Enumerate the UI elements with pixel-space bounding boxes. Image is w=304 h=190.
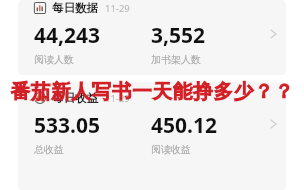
- staticText: 阅读人数: [34, 53, 74, 66]
- staticText: 450.12: [151, 111, 217, 140]
- staticText: 总收益: [34, 143, 64, 156]
- staticText: 44,243: [34, 21, 101, 50]
- staticText: 每日收益: [52, 91, 98, 105]
- button[interactable]: 查看详情: [261, 21, 286, 47]
- staticText: 11-29: [105, 92, 130, 105]
- button[interactable]: 查看详情: [261, 111, 286, 137]
- button[interactable]: 每日数据: [18, 0, 286, 75]
- staticText: 533.05: [34, 111, 100, 140]
- staticText: 加书架人数: [151, 53, 201, 66]
- staticText: 11-29: [105, 2, 130, 15]
- staticText: 每日数据: [52, 1, 98, 15]
- staticText: 阅读收益: [151, 143, 191, 156]
- staticText: 番茄新人写书一天能挣多少？？: [10, 79, 295, 104]
- staticText: 3,552: [151, 21, 206, 50]
- button[interactable]: 每日收益: [18, 82, 286, 190]
